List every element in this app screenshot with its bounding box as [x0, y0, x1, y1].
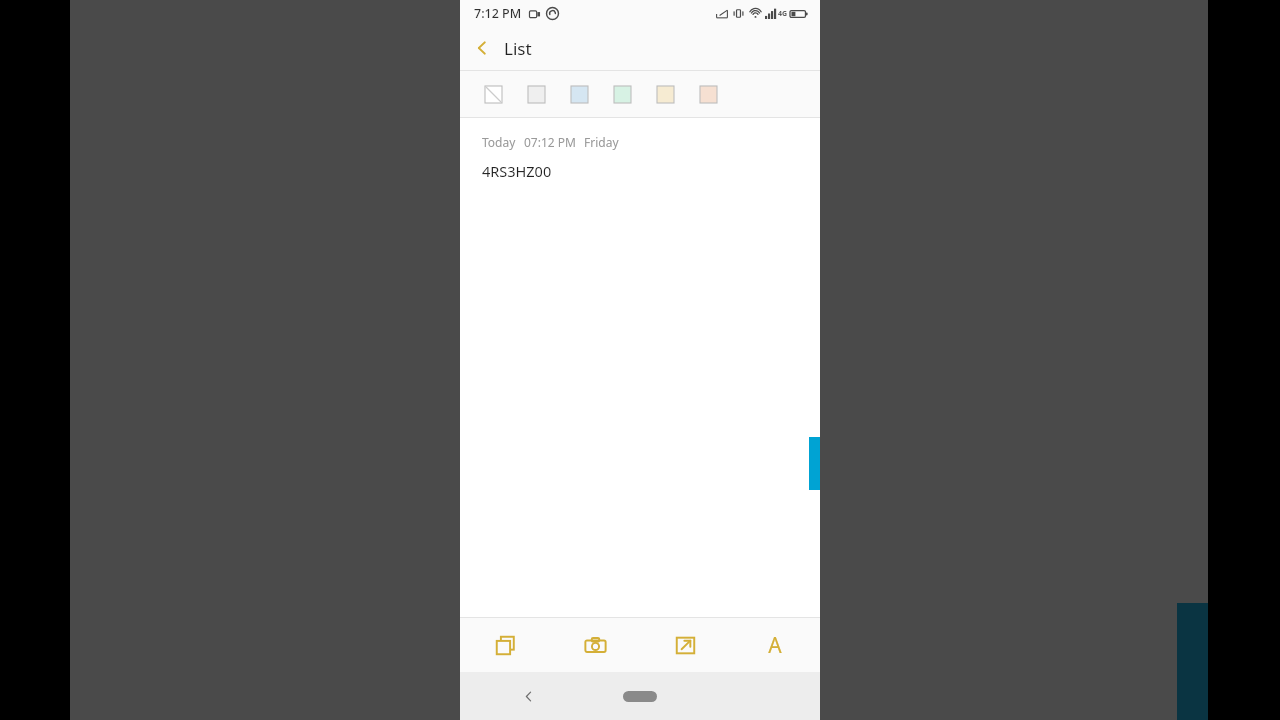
button[interactable]: Text style: [730, 618, 820, 672]
staticText: 4G: [778, 9, 788, 19]
button[interactable]: Share: [640, 618, 730, 672]
button[interactable]: Camera: [550, 618, 640, 672]
staticText: 4RS3HZ00: [482, 161, 552, 181]
button[interactable]: Colour 5: [700, 74, 743, 114]
button[interactable]: Colour 0: [485, 74, 528, 114]
button[interactable]: Colour 1: [528, 74, 571, 114]
button[interactable]: Colour 3: [614, 74, 657, 114]
staticText: Friday: [584, 134, 619, 150]
staticText: A: [768, 631, 782, 660]
button[interactable]: Back: [510, 678, 546, 714]
button[interactable]: Add list item: [460, 618, 550, 672]
staticText: List: [504, 37, 532, 60]
button[interactable]: 4RS3HZ00: [460, 161, 820, 181]
button[interactable]: Back: [460, 26, 504, 70]
button[interactable]: Colour 2: [571, 74, 614, 114]
staticText: 07:12 PM: [524, 134, 576, 150]
staticText: Today: [482, 134, 516, 150]
button[interactable]: Home: [610, 683, 670, 709]
staticText: 7:12 PM: [474, 5, 522, 22]
button[interactable]: Colour 4: [657, 74, 700, 114]
